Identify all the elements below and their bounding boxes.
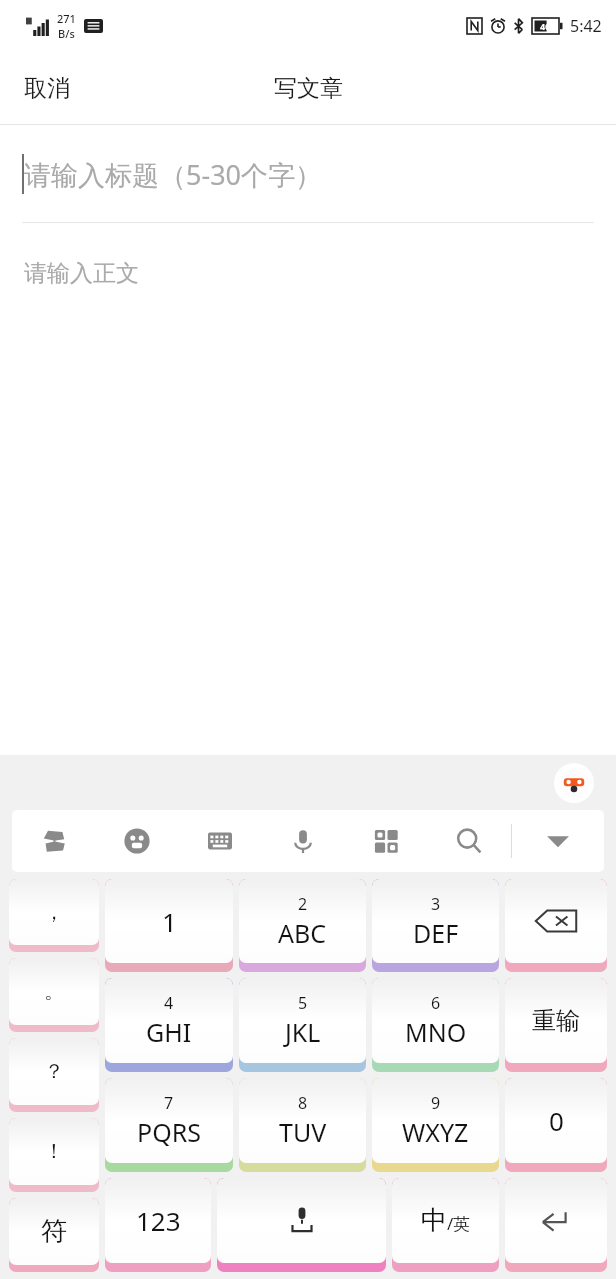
staticText: JKL (285, 1015, 321, 1049)
button[interactable]: Emoji (108, 812, 166, 870)
button[interactable]: 5 (239, 978, 366, 1072)
button[interactable]: 。 (9, 958, 99, 1032)
button[interactable]: 6 (372, 978, 499, 1072)
button[interactable]: 重输 (505, 978, 607, 1072)
other: Space (285, 1204, 319, 1238)
button[interactable]: 9 (372, 1078, 499, 1172)
button[interactable]: Enter (505, 1178, 607, 1272)
button[interactable]: Voice input (274, 812, 332, 870)
staticText: 请输入正文 (24, 259, 139, 288)
staticText: 9 (431, 1092, 441, 1114)
staticText: 8 (298, 1092, 308, 1114)
staticText: DEF (413, 916, 459, 950)
staticText: ！ (44, 1139, 64, 1164)
staticText: 0 (549, 1103, 564, 1138)
staticText: /英 (447, 1212, 471, 1235)
button[interactable]: Keyboard (191, 812, 249, 870)
button[interactable]: ？ (9, 1038, 99, 1112)
staticText: TUV (279, 1115, 327, 1149)
button[interactable]: 取消 (0, 60, 94, 117)
button[interactable]: Sogou (25, 812, 83, 870)
staticText: 写文章 (274, 74, 343, 103)
staticText: 请输入标题（5-30个字） (24, 156, 323, 193)
staticText: 5:42 (570, 15, 602, 37)
button[interactable]: Assistant (554, 763, 594, 803)
button[interactable]: 123 (105, 1178, 211, 1272)
staticText: 7 (164, 1092, 174, 1114)
button[interactable]: 2 (239, 879, 366, 972)
button[interactable]: 4 (105, 978, 233, 1072)
staticText: 6 (431, 992, 441, 1014)
staticText: GHI (146, 1015, 192, 1049)
staticText: 取消 (24, 74, 70, 103)
button[interactable]: 中 (392, 1178, 499, 1272)
button[interactable]: Space (217, 1178, 386, 1272)
button[interactable]: 1 (105, 879, 233, 972)
button[interactable]: Hide keyboard (512, 810, 604, 872)
staticText: 1 (162, 904, 177, 939)
button[interactable]: More (357, 812, 415, 870)
staticText: 。 (44, 979, 64, 1004)
button[interactable]: 0 (505, 1078, 607, 1172)
staticText: PQRS (137, 1115, 201, 1149)
staticText: ？ (44, 1059, 64, 1084)
button[interactable]: Backspace (505, 879, 607, 972)
staticText: WXYZ (402, 1115, 469, 1149)
staticText: 123 (136, 1203, 181, 1238)
staticText: 4 (164, 992, 174, 1014)
staticText: 重输 (532, 1006, 580, 1036)
staticText: 中 (421, 1204, 447, 1237)
staticText: B/s (58, 26, 75, 41)
staticText: 2 (298, 893, 308, 915)
staticText: 3 (431, 893, 441, 915)
staticText: MNO (405, 1015, 467, 1049)
button[interactable]: 符 (9, 1198, 99, 1272)
staticText: 符 (41, 1215, 67, 1248)
staticText: ， (44, 900, 64, 925)
staticText: ABC (278, 916, 327, 950)
staticText: 40 (540, 20, 551, 32)
button[interactable]: ， (9, 879, 99, 952)
button[interactable]: 7 (105, 1078, 233, 1172)
button[interactable]: ！ (9, 1118, 99, 1192)
staticText: 271 (57, 11, 76, 26)
other: Enter (541, 1209, 571, 1233)
button[interactable]: 8 (239, 1078, 366, 1172)
button[interactable]: 3 (372, 879, 499, 972)
other: Backspace (534, 908, 578, 934)
staticText: 5 (298, 992, 308, 1014)
button[interactable]: Search (440, 812, 498, 870)
